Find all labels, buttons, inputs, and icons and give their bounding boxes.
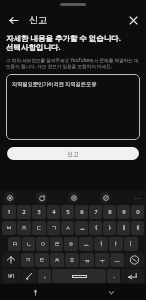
button[interactable]: Backspace bbox=[125, 253, 144, 267]
button[interactable]: Settings bbox=[68, 192, 79, 203]
button[interactable]: ㅛ bbox=[75, 221, 88, 235]
button[interactable]: !#1 bbox=[2, 269, 21, 283]
staticText: ㄷ bbox=[36, 224, 42, 232]
staticText: ㅔ bbox=[135, 224, 141, 232]
button[interactable]: ㄹ bbox=[50, 237, 63, 251]
button[interactable]: ㅍ bbox=[65, 253, 79, 267]
button[interactable]: GIF bbox=[36, 192, 47, 203]
staticText: ㅡ bbox=[114, 256, 120, 264]
staticText: ㅛ bbox=[79, 224, 85, 232]
staticText: ㅌ bbox=[39, 256, 45, 264]
button[interactable]: ㅓ bbox=[94, 237, 108, 251]
button[interactable]: Close bbox=[125, 12, 141, 28]
staticText: ㄱ bbox=[51, 224, 57, 232]
staticText: 4 bbox=[52, 208, 56, 216]
button[interactable]: ㅇ bbox=[36, 237, 49, 251]
button[interactable]: Translate bbox=[100, 192, 111, 203]
button[interactable]: ㅜ bbox=[95, 253, 109, 267]
staticText: 3 bbox=[37, 208, 41, 216]
staticText: ㅏ bbox=[113, 240, 119, 248]
staticText: ㅋ bbox=[25, 256, 31, 264]
button[interactable]: 7 bbox=[89, 205, 102, 219]
staticText: 지역필요뿐인가이걱컨 지역길든포유 bbox=[12, 80, 97, 87]
staticText: . bbox=[113, 272, 115, 280]
button[interactable]: 0 bbox=[131, 205, 144, 219]
button[interactable]: Shift bbox=[2, 253, 20, 267]
staticText: 0 bbox=[136, 208, 140, 216]
button[interactable]: ㅗ bbox=[79, 237, 93, 251]
button[interactable]: 1 bbox=[2, 205, 16, 219]
staticText: ㅈ bbox=[21, 224, 27, 232]
staticText: ㅐ bbox=[121, 224, 127, 232]
staticText: ㅍ bbox=[69, 256, 75, 264]
staticText: 2 bbox=[22, 208, 26, 216]
staticText: ㅇ bbox=[40, 240, 46, 248]
staticText: 신고 bbox=[29, 14, 47, 25]
button[interactable]: ㅠ bbox=[80, 253, 94, 267]
staticText: ㅂ bbox=[6, 224, 12, 232]
staticText: 9 bbox=[122, 208, 126, 216]
button[interactable]: ㅌ bbox=[35, 253, 49, 267]
button[interactable]: ㅣ bbox=[124, 237, 138, 251]
staticText: 7 bbox=[94, 208, 98, 216]
button[interactable]: 6 bbox=[75, 205, 88, 219]
staticText: ㅎ bbox=[68, 240, 74, 248]
button[interactable]: ㅕ bbox=[89, 221, 102, 235]
button[interactable]: Enter bbox=[121, 269, 144, 283]
staticText: ⋯ bbox=[134, 194, 140, 201]
button[interactable]: ㅑ bbox=[103, 221, 116, 235]
button[interactable]: ㅅ bbox=[61, 221, 74, 235]
staticText: ㅑ bbox=[107, 224, 113, 232]
staticText: ㅠ bbox=[84, 256, 90, 264]
button[interactable]: ㅋ bbox=[21, 253, 34, 267]
staticText: 8 bbox=[108, 208, 112, 216]
button[interactable]: Voice input bbox=[22, 269, 37, 283]
button[interactable]: ㅎ bbox=[64, 237, 78, 251]
staticText: ㅕ bbox=[93, 224, 99, 232]
staticText: 자세한 내용을 추가할 수 없습니다. 선택사항입니다. bbox=[6, 33, 121, 53]
staticText: ㅊ bbox=[54, 256, 60, 264]
staticText: ㅣ bbox=[128, 240, 134, 248]
staticText: 그 밖의 세부정보를 알려주세요 YouTube에서 문제를 해결하는 데 도움… bbox=[6, 57, 139, 69]
staticText: ㅅ bbox=[65, 224, 71, 232]
button[interactable]: ㅊ bbox=[50, 253, 64, 267]
staticText: 6 bbox=[80, 208, 84, 216]
button[interactable]: ㅔ bbox=[131, 221, 144, 235]
button[interactable]: More bbox=[132, 192, 142, 202]
button[interactable]: Hide keyboard bbox=[105, 286, 117, 298]
button[interactable]: ㅏ bbox=[109, 237, 123, 251]
button[interactable]: 3 bbox=[32, 205, 46, 219]
button[interactable]: 지역필요뿐인가이걱컨 지역길든포유 bbox=[6, 74, 140, 140]
button[interactable]: Back bbox=[5, 12, 21, 28]
button[interactable]: ㅈ bbox=[17, 221, 31, 235]
button[interactable]: 8 bbox=[103, 205, 116, 219]
staticText: 신고 bbox=[67, 150, 79, 158]
button[interactable]: ㄱ bbox=[47, 221, 60, 235]
button[interactable]: Sticker bbox=[4, 192, 15, 203]
staticText: ㅜ bbox=[99, 256, 105, 264]
staticText: 1 bbox=[7, 208, 11, 216]
button[interactable]: 5 bbox=[61, 205, 74, 219]
button[interactable]: . bbox=[107, 269, 120, 283]
button[interactable]: ㅡ bbox=[110, 253, 124, 267]
button[interactable]: 신고 bbox=[7, 147, 139, 160]
staticText: ㅓ bbox=[98, 240, 104, 248]
staticText: ㄴ bbox=[26, 240, 32, 248]
button[interactable]: ㄴ bbox=[22, 237, 35, 251]
button[interactable]: ㅂ bbox=[2, 221, 16, 235]
staticText: ㅁ bbox=[12, 240, 18, 248]
staticText: ㄹ bbox=[54, 240, 60, 248]
button[interactable]: 2 bbox=[17, 205, 31, 219]
button[interactable]: ㄷ bbox=[32, 221, 46, 235]
button[interactable]: Microphone bbox=[29, 286, 41, 298]
staticText: ㅗ bbox=[83, 240, 89, 248]
staticText: !#1 bbox=[8, 273, 15, 279]
staticText: 5 bbox=[66, 208, 70, 216]
button[interactable]: 4 bbox=[47, 205, 60, 219]
button[interactable]: 9 bbox=[117, 205, 130, 219]
staticText: , bbox=[44, 272, 46, 280]
button[interactable]: , bbox=[38, 269, 51, 283]
button[interactable]: ㅁ bbox=[8, 237, 21, 251]
button[interactable]: ㅐ bbox=[117, 221, 130, 235]
button[interactable]: Space bbox=[52, 269, 106, 283]
